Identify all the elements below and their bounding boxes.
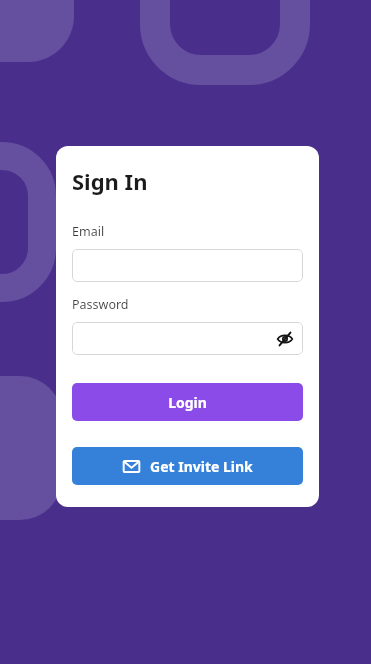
button[interactable]: Get Invite Link xyxy=(72,447,303,485)
staticText: Email xyxy=(72,223,105,240)
button[interactable]: Login xyxy=(72,383,303,421)
staticText: Password xyxy=(72,296,129,313)
button[interactable]: Show password xyxy=(275,329,295,349)
staticText: Login xyxy=(168,393,207,412)
staticText: Get Invite Link xyxy=(150,457,253,476)
staticText: Sign In xyxy=(72,166,148,196)
button[interactable] xyxy=(72,249,303,282)
button[interactable]: Show password xyxy=(72,322,303,355)
